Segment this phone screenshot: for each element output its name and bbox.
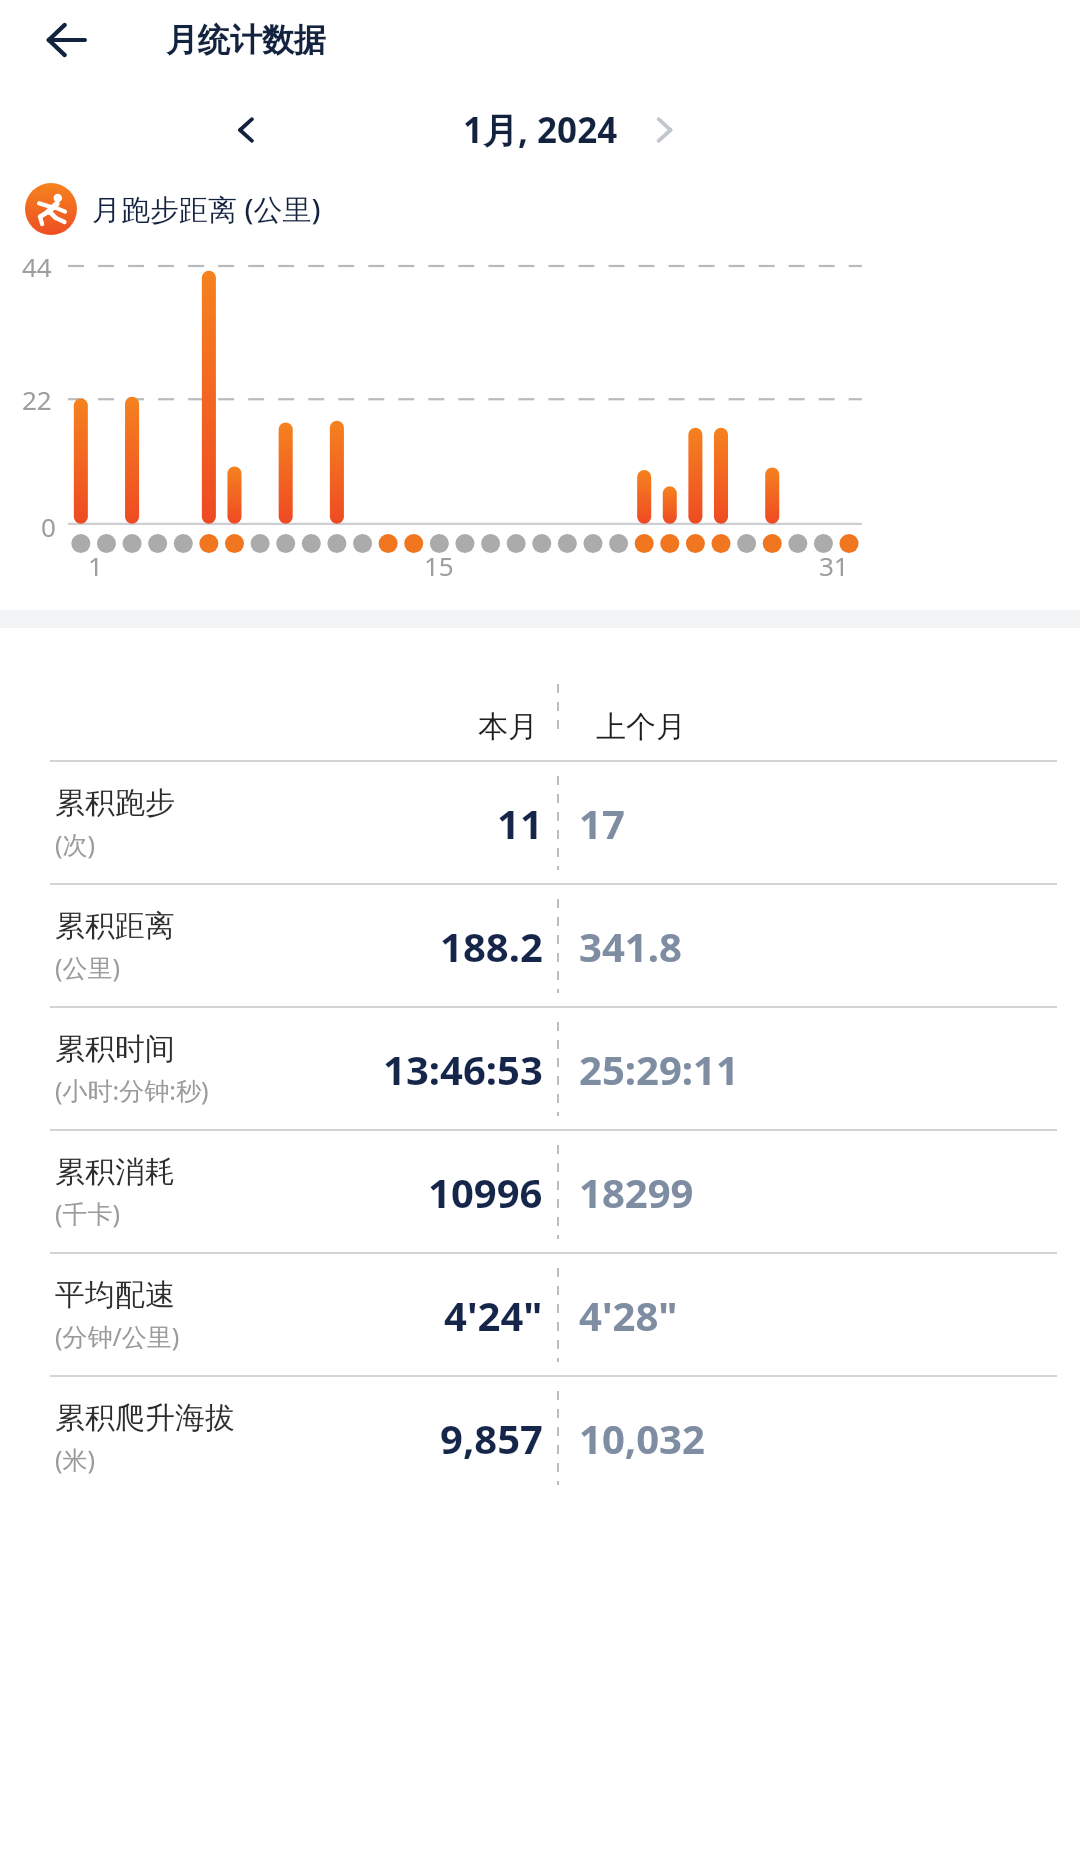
button[interactable]: 累积时间: [23, 1008, 1057, 1129]
staticText: 月统计数据: [166, 20, 326, 60]
staticText: 188.2: [440, 919, 543, 973]
staticText: 44: [22, 249, 52, 284]
staticText: 10,032: [579, 1411, 705, 1465]
staticText: 11: [497, 796, 543, 850]
staticText: 4'28": [579, 1288, 678, 1342]
staticText: 341.8: [579, 919, 682, 973]
staticText: 4'24": [444, 1288, 543, 1342]
staticText: 累积跑步: [55, 784, 175, 822]
staticText: 累积消耗: [55, 1153, 175, 1191]
staticText: 1: [88, 548, 103, 583]
staticText: (千卡): [55, 1196, 121, 1230]
button[interactable]: 累积爬升海拔: [23, 1377, 1057, 1498]
staticText: 10996: [428, 1165, 543, 1219]
staticText: 18299: [579, 1165, 694, 1219]
staticText: 上个月: [596, 708, 686, 746]
button[interactable]: 平均配速: [23, 1254, 1057, 1375]
button[interactable]: 累积消耗: [23, 1131, 1057, 1252]
staticText: 25:29:11: [579, 1042, 739, 1096]
staticText: (次): [55, 827, 96, 861]
staticText: 累积爬升海拔: [55, 1399, 235, 1437]
button[interactable]: 累积距离: [23, 885, 1057, 1006]
staticText: 15: [424, 548, 454, 583]
staticText: (小时:分钟:秒): [55, 1073, 209, 1107]
staticText: 累积距离: [55, 907, 175, 945]
button[interactable]: Next month: [632, 98, 696, 162]
staticText: (分钟/公里): [55, 1319, 180, 1353]
staticText: 13:46:53: [383, 1042, 543, 1096]
staticText: (公里): [55, 950, 121, 984]
button[interactable]: Previous month: [214, 98, 278, 162]
staticText: 0: [41, 509, 56, 544]
staticText: 22: [22, 382, 52, 417]
staticText: 累积时间: [55, 1030, 175, 1068]
staticText: 9,857: [440, 1411, 543, 1465]
button[interactable]: Back: [28, 2, 104, 78]
button[interactable]: 累积跑步: [23, 762, 1057, 883]
staticText: 本月: [478, 708, 538, 746]
staticText: 月跑步距离 (公里): [92, 189, 321, 229]
staticText: 平均配速: [55, 1276, 175, 1314]
staticText: 31: [819, 548, 849, 583]
staticText: 17: [579, 796, 625, 850]
staticText: 1月, 2024: [463, 106, 618, 154]
staticText: (米): [55, 1442, 96, 1476]
